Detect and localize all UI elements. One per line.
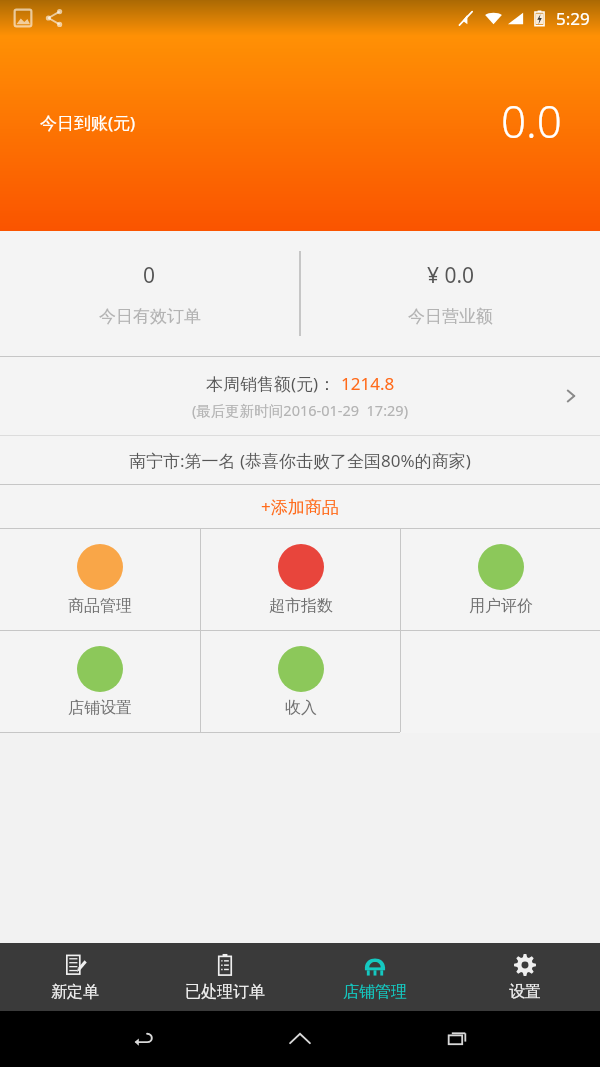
staticText: 已处理订单	[185, 982, 265, 1002]
staticText: 今日到账(元)	[40, 111, 136, 134]
button[interactable]: ¥ 0.0	[301, 231, 600, 356]
staticText: 0	[143, 261, 156, 290]
staticText: 今日营业额	[408, 306, 493, 327]
button[interactable]: 店铺设置	[0, 631, 200, 732]
button[interactable]: 本周销售额(元)：	[0, 357, 600, 484]
staticText: (最后更新时间2016-01-29 17:29)	[192, 400, 408, 420]
button[interactable]: 店铺管理	[300, 943, 450, 1011]
staticText: 5:29	[556, 7, 590, 30]
staticText: 0.0	[501, 91, 562, 151]
staticText: 本周销售额(元)：	[206, 372, 336, 395]
staticText: 今日有效订单	[99, 306, 201, 327]
button[interactable]: 已处理订单	[150, 943, 300, 1011]
button[interactable]: Back	[131, 1026, 157, 1052]
staticText: ¥ 0.0	[427, 261, 475, 290]
button[interactable]: Recents	[444, 1026, 470, 1052]
staticText: 用户评价	[469, 596, 533, 616]
button[interactable]: 新定单	[0, 943, 150, 1011]
staticText: 新定单	[51, 982, 99, 1002]
staticText: 超市指数	[269, 596, 333, 616]
button[interactable]: 设置	[450, 943, 600, 1011]
button[interactable]: 超市指数	[201, 529, 400, 630]
staticText: 店铺管理	[343, 982, 407, 1002]
staticText: 商品管理	[68, 596, 132, 616]
other: 查看详情	[562, 387, 580, 405]
staticText: +添加商品	[261, 495, 339, 518]
button[interactable]: 用户评价	[401, 529, 600, 630]
button[interactable]: Home	[287, 1026, 313, 1052]
staticText: 设置	[509, 982, 541, 1002]
button[interactable]: 商品管理	[0, 529, 200, 630]
button[interactable]: 0	[0, 231, 299, 356]
button[interactable]: +添加商品	[0, 485, 600, 528]
staticText: 1214.8	[341, 372, 395, 395]
staticText: 店铺设置	[68, 698, 132, 718]
staticText: 南宁市:第一名 (恭喜你击败了全国80%的商家)	[129, 449, 471, 472]
button[interactable]: 收入	[201, 631, 400, 732]
staticText: 收入	[285, 698, 317, 718]
